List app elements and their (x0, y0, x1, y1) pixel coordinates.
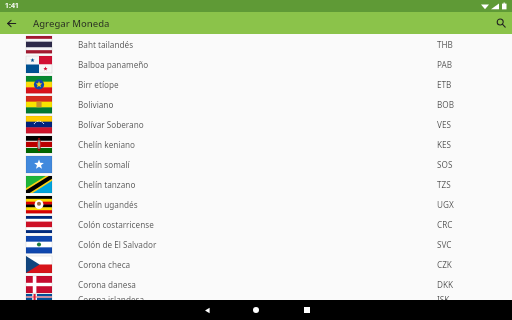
staticText: Birr etíope (78, 79, 119, 90)
staticText: Corona danesa (78, 279, 136, 290)
button[interactable]: Bolívar Soberano (0, 114, 512, 134)
staticText: Colón costarricense (78, 219, 154, 230)
staticText: UGX (437, 199, 454, 210)
staticText: Colón de El Salvador (78, 239, 157, 250)
staticText: VES (437, 119, 451, 130)
button[interactable]: Search (490, 12, 512, 34)
staticText: PAB (437, 59, 453, 70)
button[interactable]: Back (0, 12, 22, 34)
button[interactable]: Recent apps (297, 300, 317, 320)
staticText: Chelín tanzano (78, 179, 136, 190)
staticText: TZS (437, 179, 451, 190)
staticText: Boliviano (78, 99, 114, 110)
button[interactable]: Corona danesa (0, 274, 512, 294)
button[interactable]: Balboa panameño (0, 54, 512, 74)
staticText: Baht tailandés (78, 39, 134, 50)
button[interactable]: Boliviano (0, 94, 512, 114)
button[interactable]: Chelín tanzano (0, 174, 512, 194)
staticText: Corona checa (78, 259, 131, 270)
button[interactable]: Colón de El Salvador (0, 234, 512, 254)
button[interactable]: Birr etíope (0, 74, 512, 94)
button[interactable]: Chelín ugandés (0, 194, 512, 214)
staticText: Bolívar Soberano (78, 119, 144, 130)
button[interactable]: Home (246, 300, 266, 320)
button[interactable]: Baht tailandés (0, 34, 512, 54)
staticText: CZK (437, 259, 452, 270)
staticText: KES (437, 139, 452, 150)
staticText: ETB (437, 79, 452, 90)
button[interactable]: Corona islandesa (0, 294, 512, 300)
staticText: DKK (437, 279, 454, 290)
staticText: CRC (437, 219, 453, 230)
staticText: SVC (437, 239, 452, 250)
staticText: 1:41 (5, 1, 19, 11)
staticText: Chelín keniano (78, 139, 136, 150)
staticText: SOS (437, 159, 453, 170)
staticText: THB (437, 39, 453, 50)
staticText: Chelín ugandés (78, 199, 138, 210)
button[interactable]: Colón costarricense (0, 214, 512, 234)
staticText: Agregar Moneda (33, 17, 110, 30)
staticText: BOB (437, 99, 455, 110)
button[interactable]: Chelín somalí (0, 154, 512, 174)
staticText: Corona islandesa (78, 294, 145, 300)
staticText: Balboa panameño (78, 59, 149, 70)
button[interactable]: Chelín keniano (0, 134, 512, 154)
button[interactable]: Back (197, 300, 217, 320)
staticText: ISK (437, 294, 450, 300)
staticText: Chelín somalí (78, 159, 130, 170)
button[interactable]: Corona checa (0, 254, 512, 274)
